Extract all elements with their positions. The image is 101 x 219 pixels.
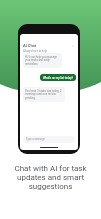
- button[interactable]: Type a message: [23, 136, 75, 143]
- staticText: What's on my list today?: [43, 76, 73, 79]
- staticText: You have 3 tasks due today, 2 meetings a…: [25, 89, 63, 100]
- staticText: Hi! I can help you manage your tasks and…: [25, 55, 60, 66]
- staticText: Type a message: [26, 138, 45, 141]
- staticText: Chat with AI for task updates and smart …: [8, 164, 93, 191]
- button[interactable]: More options: [70, 43, 75, 48]
- staticText: Always here to help: [23, 49, 48, 52]
- staticText: AI Chat: [23, 43, 37, 48]
